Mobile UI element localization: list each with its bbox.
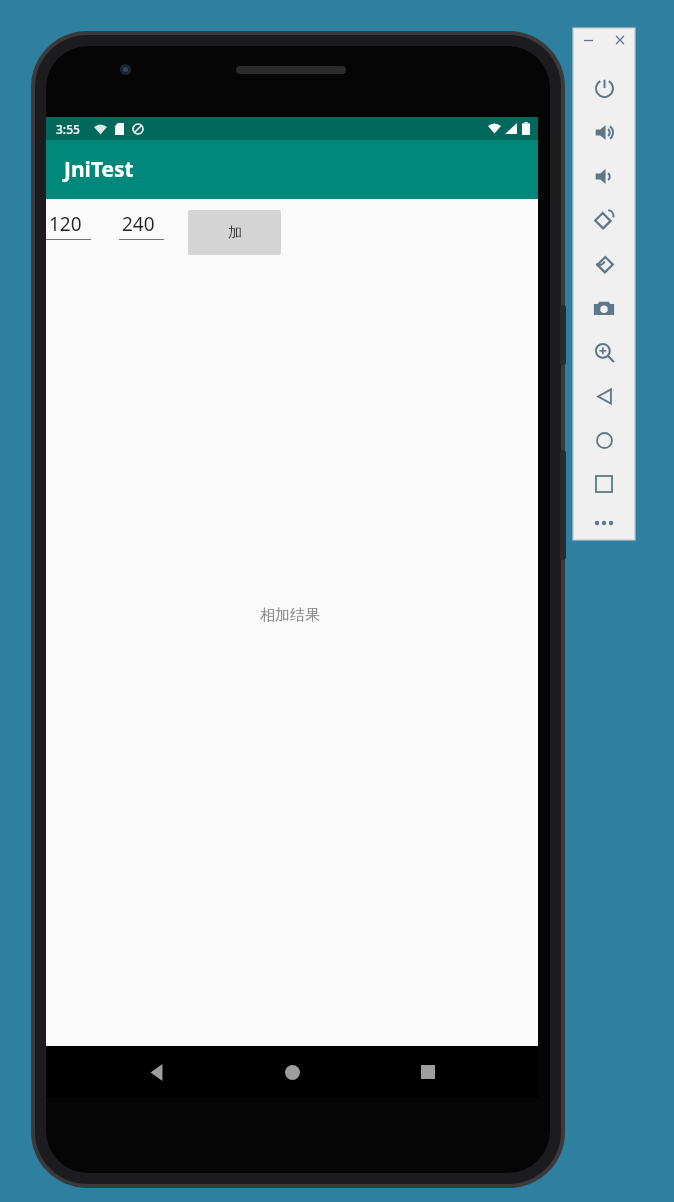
- staticText: 240: [122, 211, 155, 237]
- button[interactable]: Rotate left: [573, 198, 635, 242]
- button[interactable]: 加: [188, 210, 281, 255]
- staticText: 3:55: [56, 121, 80, 137]
- staticText: JniTest: [64, 155, 134, 184]
- button[interactable]: Home: [573, 418, 635, 462]
- button[interactable]: 120: [46, 209, 98, 240]
- button[interactable]: Power: [573, 66, 635, 110]
- button[interactable]: Zoom: [573, 330, 635, 374]
- button[interactable]: Home: [270, 1050, 314, 1094]
- button[interactable]: More: [573, 506, 635, 540]
- button[interactable]: Recent apps: [406, 1050, 450, 1094]
- staticText: 120: [49, 211, 82, 237]
- button[interactable]: Back: [134, 1050, 178, 1094]
- button[interactable]: Volume down: [573, 154, 635, 198]
- button[interactable]: Overview: [573, 462, 635, 506]
- button[interactable]: Back: [573, 374, 635, 418]
- staticText: 加: [228, 224, 242, 242]
- button[interactable]: 240: [119, 209, 171, 240]
- staticText: 相加结果: [260, 606, 320, 625]
- button[interactable]: Volume up: [573, 110, 635, 154]
- button[interactable]: Take screenshot: [573, 286, 635, 330]
- button[interactable]: Rotate right: [573, 242, 635, 286]
- button[interactable]: Minimize: [578, 30, 598, 50]
- button[interactable]: Close: [610, 30, 630, 50]
